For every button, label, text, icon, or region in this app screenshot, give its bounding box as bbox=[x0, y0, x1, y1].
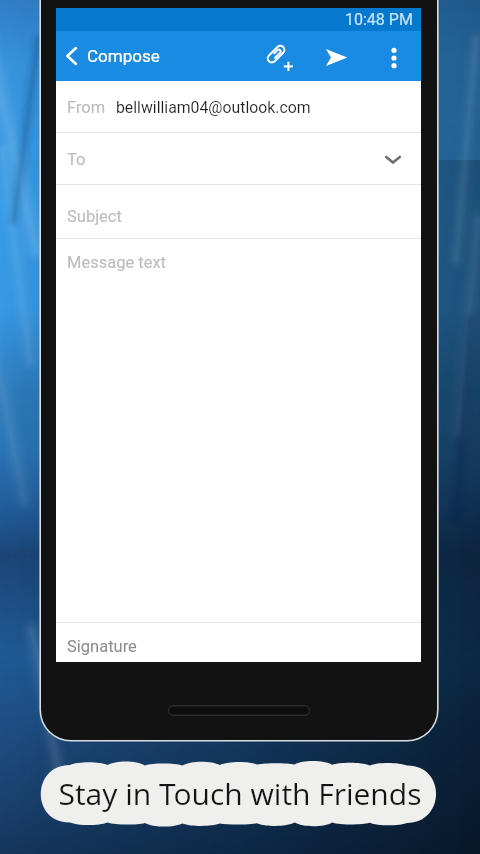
button[interactable]: From bbox=[56, 81, 421, 133]
button[interactable]: Subject bbox=[56, 185, 421, 239]
staticText: Stay in Touch with Friends bbox=[0, 773, 480, 814]
button[interactable]: Signature bbox=[56, 623, 421, 662]
button[interactable]: To bbox=[56, 133, 421, 185]
staticText: Message text bbox=[67, 253, 166, 272]
staticText: To bbox=[67, 150, 86, 169]
staticText: Signature bbox=[67, 637, 137, 656]
staticText: Subject bbox=[67, 207, 122, 226]
button[interactable]: Message text bbox=[56, 239, 421, 623]
button[interactable]: Send bbox=[314, 35, 358, 79]
button[interactable]: Compose bbox=[87, 46, 160, 66]
button[interactable]: More options bbox=[371, 35, 416, 80]
staticText: bellwilliam04@outlook.com bbox=[116, 98, 311, 117]
button[interactable]: Back bbox=[56, 31, 88, 81]
staticText: From bbox=[67, 98, 106, 117]
staticText: 10:48 PM bbox=[345, 10, 413, 29]
button[interactable]: Attach file bbox=[257, 35, 302, 80]
